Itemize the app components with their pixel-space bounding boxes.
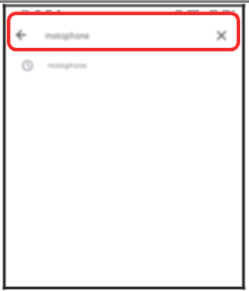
button[interactable]: motophone — [14, 54, 238, 77]
button[interactable]: Back — [8, 22, 34, 48]
button[interactable]: Clear — [208, 22, 234, 48]
staticText: motophone — [48, 61, 87, 71]
staticText: motophone — [45, 30, 90, 41]
